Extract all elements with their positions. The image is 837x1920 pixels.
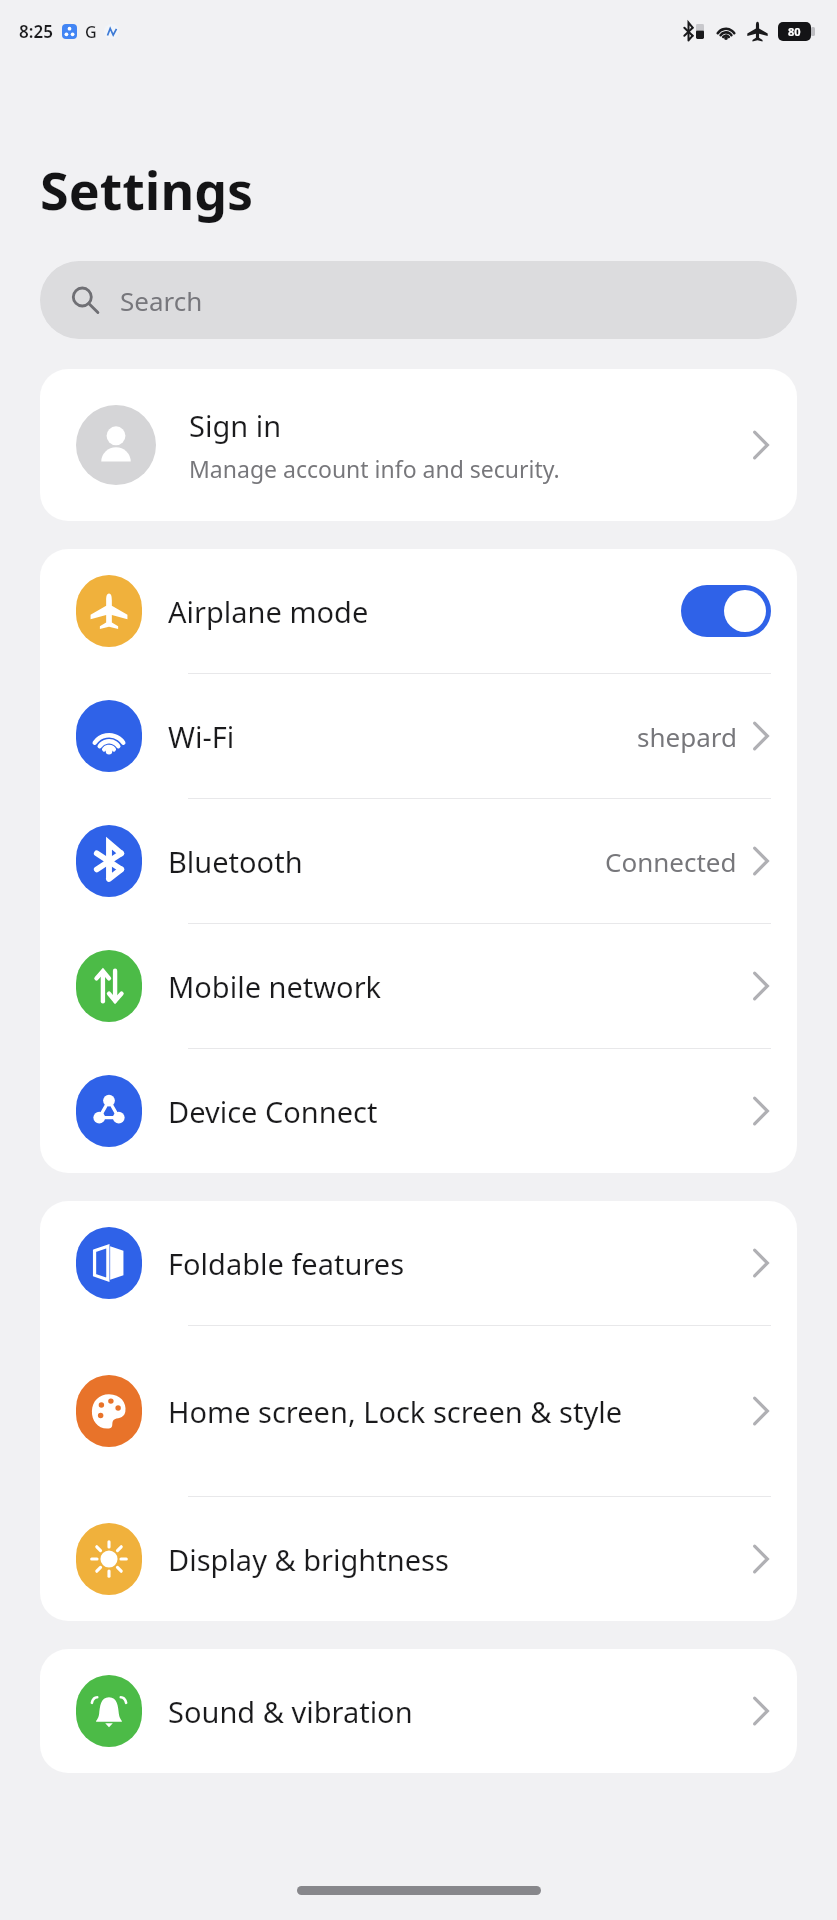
staticText: Home screen, Lock screen & style bbox=[168, 1392, 739, 1431]
staticText: Manage account info and security. bbox=[189, 453, 560, 484]
button[interactable]: Sign in bbox=[40, 369, 797, 521]
staticText: Airplane mode bbox=[168, 592, 669, 631]
staticText: Connected bbox=[605, 844, 737, 879]
staticText: Sign in bbox=[189, 406, 282, 445]
staticText: Settings bbox=[40, 154, 254, 225]
staticText: shepard bbox=[637, 719, 737, 754]
button[interactable]: Mobile network bbox=[40, 924, 797, 1048]
staticText: 8:25 bbox=[19, 20, 53, 43]
staticText: G bbox=[85, 21, 97, 43]
staticText: Mobile network bbox=[168, 967, 739, 1006]
button[interactable]: Foldable features bbox=[40, 1201, 797, 1325]
staticText: Foldable features bbox=[168, 1244, 739, 1283]
staticText: Bluetooth bbox=[168, 842, 593, 881]
button[interactable]: Airplane mode bbox=[40, 549, 797, 673]
button[interactable]: Device Connect bbox=[40, 1049, 797, 1173]
staticText: Wi-Fi bbox=[168, 717, 625, 756]
button[interactable]: Search bbox=[40, 261, 797, 339]
staticText: 80 bbox=[788, 24, 801, 39]
button[interactable]: Sound & vibration bbox=[40, 1649, 797, 1773]
button[interactable]: Bluetooth bbox=[40, 799, 797, 923]
staticText: Display & brightness bbox=[168, 1540, 739, 1579]
staticText: Sound & vibration bbox=[168, 1692, 739, 1731]
button[interactable]: Airplane mode toggle bbox=[681, 585, 771, 637]
button[interactable]: Display & brightness bbox=[40, 1497, 797, 1621]
staticText: Device Connect bbox=[168, 1092, 739, 1131]
button[interactable]: Home screen, Lock screen & style bbox=[40, 1326, 797, 1496]
staticText: Search bbox=[120, 283, 203, 318]
button[interactable]: Wi-Fi bbox=[40, 674, 797, 798]
